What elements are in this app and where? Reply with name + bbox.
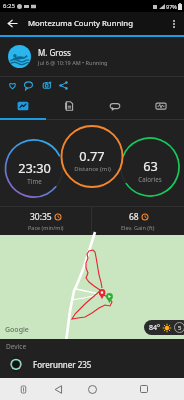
button[interactable]: Navigate up bbox=[0, 12, 25, 35]
button[interactable]: 84° bbox=[149, 322, 184, 333]
button[interactable]: Forerunner 235 bbox=[0, 351, 184, 377]
button[interactable]: Notes bbox=[46, 93, 92, 118]
button[interactable]: Switch input method bbox=[14, 380, 32, 398]
button[interactable]: Recent apps bbox=[134, 379, 154, 399]
staticText: 6:25 bbox=[3, 2, 15, 10]
staticText: 0.77 bbox=[79, 147, 105, 164]
button[interactable]: Like bbox=[5, 78, 19, 92]
button[interactable]: Details bbox=[0, 93, 46, 118]
button[interactable]: M. Gross bbox=[0, 37, 184, 76]
button[interactable]: 68 bbox=[92, 207, 184, 235]
staticText: 30:35 bbox=[30, 211, 52, 223]
button[interactable]: Comment bbox=[21, 78, 35, 92]
button[interactable]: Back bbox=[48, 379, 68, 399]
staticText: Calories bbox=[138, 175, 162, 183]
staticText: Montezuma County Running bbox=[28, 18, 133, 29]
staticText: Forerunner 235 bbox=[33, 359, 92, 370]
staticText: Distance (mi) bbox=[74, 165, 111, 173]
button[interactable]: More options bbox=[164, 12, 184, 35]
staticText: Google bbox=[5, 325, 29, 335]
staticText: 84° bbox=[149, 323, 161, 333]
staticText: Jul 6 @ 10:19 AM • Running bbox=[38, 59, 108, 66]
staticText: Elev. Gain (ft) bbox=[121, 224, 155, 231]
button[interactable]: Google bbox=[0, 235, 184, 339]
button[interactable]: Photo bbox=[40, 78, 54, 92]
button[interactable]: Laps bbox=[92, 93, 138, 118]
button[interactable]: 30:35 bbox=[0, 207, 91, 235]
staticText: Time bbox=[27, 177, 42, 185]
button[interactable]: Share bbox=[56, 78, 70, 92]
staticText: 97% bbox=[166, 3, 177, 10]
staticText: M. Gross bbox=[38, 47, 71, 58]
staticText: Pace (min/mi) bbox=[28, 224, 64, 231]
staticText: 63 bbox=[143, 157, 158, 174]
button[interactable]: Heart rate bbox=[138, 93, 184, 118]
staticText: 23:30 bbox=[18, 159, 51, 176]
staticText: Device bbox=[6, 342, 27, 351]
staticText: 68 bbox=[129, 211, 139, 223]
staticText: 5 bbox=[178, 324, 182, 332]
button[interactable]: Home bbox=[82, 379, 102, 399]
